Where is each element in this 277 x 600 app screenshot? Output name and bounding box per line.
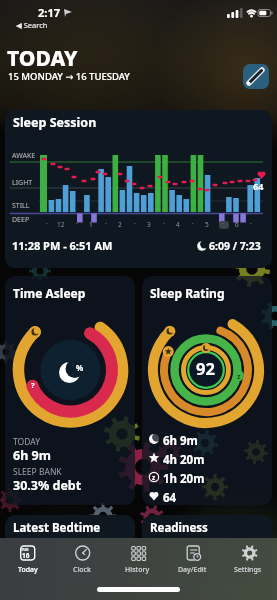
staticText: 3 bbox=[147, 220, 151, 229]
staticText: 5 bbox=[205, 220, 209, 229]
staticText: z bbox=[152, 473, 156, 482]
staticText: TODAY bbox=[7, 44, 78, 73]
staticText: · bbox=[192, 219, 194, 228]
staticText: Clock bbox=[73, 565, 91, 575]
staticText: · bbox=[222, 219, 224, 228]
staticText: ? bbox=[31, 380, 35, 390]
staticText: 2:17 bbox=[38, 5, 60, 20]
staticText: · bbox=[250, 219, 252, 228]
button[interactable] bbox=[142, 276, 272, 505]
button[interactable] bbox=[5, 110, 272, 268]
staticText: · bbox=[46, 219, 48, 228]
staticText: z bbox=[237, 372, 241, 382]
staticText: 6h 9m bbox=[163, 433, 198, 449]
staticText: · bbox=[163, 219, 165, 228]
staticText: History bbox=[125, 565, 150, 575]
staticText: 64 bbox=[163, 490, 177, 506]
staticText: 6 bbox=[235, 220, 239, 229]
button[interactable] bbox=[243, 64, 269, 89]
staticText: · bbox=[105, 219, 107, 228]
staticText: Sleep Session bbox=[13, 114, 97, 131]
staticText: Sleep Rating bbox=[150, 285, 225, 301]
staticText: DEEP bbox=[12, 215, 30, 225]
staticText: 4 bbox=[176, 220, 180, 229]
button[interactable] bbox=[142, 515, 272, 585]
staticText: 1h 20m bbox=[163, 471, 205, 487]
staticText: STILL bbox=[12, 201, 30, 211]
staticText: 4h 20m bbox=[163, 452, 205, 468]
staticText: 2 bbox=[118, 220, 122, 229]
staticText: 30.3% debt bbox=[13, 477, 82, 494]
staticText: ◀ Search bbox=[16, 20, 48, 30]
button[interactable] bbox=[166, 538, 221, 588]
staticText: AWAKE bbox=[12, 151, 36, 161]
staticText: 15 MONDAY → 16 TUESDAY bbox=[8, 70, 130, 83]
button[interactable] bbox=[222, 538, 277, 588]
staticText: 12 bbox=[57, 220, 65, 229]
staticText: 16 bbox=[22, 551, 30, 560]
staticText: 1 bbox=[89, 220, 93, 229]
staticText: Latest Bedtime bbox=[13, 520, 101, 536]
staticText: 11:28 PM - 6:51 AM bbox=[12, 238, 113, 253]
staticText: 92 bbox=[196, 357, 215, 379]
staticText: · bbox=[134, 219, 136, 228]
staticText: 64 bbox=[253, 180, 264, 192]
staticText: SLEEP BANK bbox=[13, 466, 62, 478]
staticText: 6h 9m bbox=[13, 447, 51, 464]
staticText: TUE bbox=[21, 547, 29, 552]
staticText: · bbox=[76, 219, 78, 228]
button[interactable] bbox=[111, 538, 166, 588]
staticText: Today bbox=[18, 565, 38, 575]
staticText: 6:09 / 7:23 bbox=[209, 239, 261, 253]
staticText: TODAY bbox=[13, 436, 40, 448]
staticText: Time Asleep bbox=[13, 285, 86, 301]
staticText: Settings bbox=[234, 565, 262, 575]
button[interactable] bbox=[5, 515, 135, 585]
button[interactable] bbox=[5, 276, 135, 505]
staticText: Day/Edit bbox=[178, 565, 207, 575]
button[interactable]: TUE bbox=[0, 538, 55, 588]
button[interactable] bbox=[55, 538, 110, 588]
staticText: LIGHT bbox=[12, 178, 33, 188]
staticText: Readiness bbox=[150, 520, 208, 536]
staticText: % bbox=[76, 362, 84, 373]
